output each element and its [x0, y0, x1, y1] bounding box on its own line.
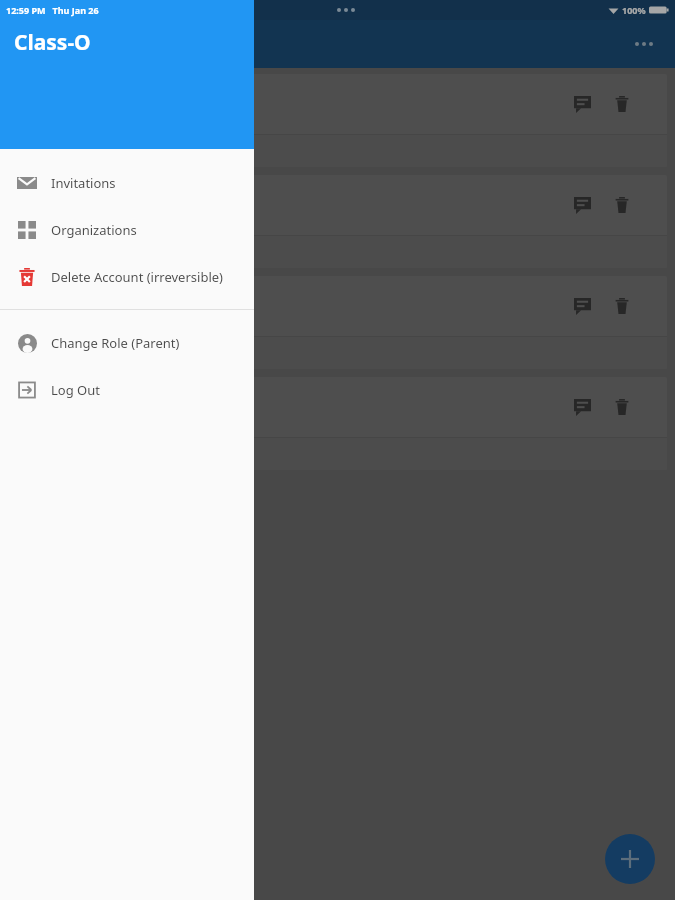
button[interactable]: Log Out	[0, 366, 254, 413]
button[interactable]: Add	[605, 834, 655, 884]
staticText: 12:59 PM Thu Jan 26	[6, 4, 99, 16]
staticText: Change Role (Parent)	[51, 334, 180, 352]
staticText: Organizations	[51, 221, 137, 239]
button[interactable]: Delete	[605, 390, 639, 424]
staticText: Log Out	[51, 381, 100, 399]
button[interactable]: Comments	[8, 175, 667, 268]
button[interactable]: Comments	[565, 390, 599, 424]
button[interactable]: Comments	[8, 377, 667, 470]
button[interactable]: Delete	[605, 289, 639, 323]
button[interactable]: Comments	[8, 74, 667, 167]
staticText: Math Tutoring	[24, 33, 138, 56]
staticText: 12:59 PM Thu Jan 26	[6, 4, 101, 16]
staticText: Class-O	[14, 28, 91, 57]
staticText: Delete Account (irreversible)	[51, 268, 223, 286]
button[interactable]: Comments	[565, 188, 599, 222]
button[interactable]: Comments	[565, 289, 599, 323]
button[interactable]: Delete Account (irreversible)	[0, 253, 254, 300]
button[interactable]: Change Role (Parent)	[0, 319, 254, 366]
button[interactable]: Invitations	[0, 159, 254, 206]
button[interactable]: Comments	[8, 276, 667, 369]
button[interactable]: Comments	[565, 87, 599, 121]
button[interactable]: More options	[629, 36, 659, 52]
staticText: 100%	[622, 4, 646, 16]
button[interactable]: Organizations	[0, 206, 254, 253]
staticText: Invitations	[51, 174, 116, 192]
button[interactable]: Delete	[605, 188, 639, 222]
button[interactable]: Delete	[605, 87, 639, 121]
